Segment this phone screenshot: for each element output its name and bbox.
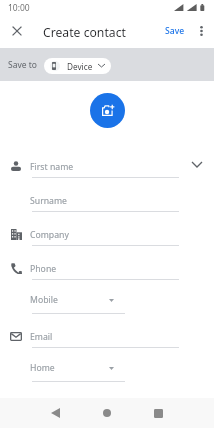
button[interactable]: Recent apps <box>144 399 172 427</box>
staticText: Save to <box>8 59 37 71</box>
button[interactable]: Email <box>0 325 214 359</box>
button[interactable]: First name <box>0 155 214 189</box>
staticText: Surname <box>30 195 67 207</box>
button[interactable]: Save <box>160 22 190 40</box>
staticText: Company <box>30 229 69 241</box>
button[interactable]: Mobile <box>0 291 214 325</box>
staticText: Create contact <box>43 24 126 41</box>
button[interactable]: Home <box>0 359 214 393</box>
button[interactable]: Home <box>93 399 121 427</box>
button[interactable]: Company <box>0 223 214 257</box>
button[interactable]: Close <box>3 17 31 45</box>
button[interactable]: Phone <box>0 257 214 291</box>
button[interactable]: Back <box>41 399 69 427</box>
staticText: Device <box>67 61 93 72</box>
staticText: Home <box>30 362 55 374</box>
button[interactable]: Expand name fields <box>185 152 209 176</box>
staticText: Phone <box>30 263 57 275</box>
button[interactable]: Add photo <box>90 93 125 128</box>
staticText: Save <box>165 25 185 37</box>
button[interactable]: Surname <box>0 189 214 223</box>
staticText: Email <box>30 331 53 343</box>
staticText: Mobile <box>30 294 58 306</box>
staticText: First name <box>30 161 74 173</box>
button[interactable]: Device <box>44 58 111 74</box>
staticText: 10:00 <box>8 2 30 14</box>
button[interactable]: More options <box>189 19 213 43</box>
